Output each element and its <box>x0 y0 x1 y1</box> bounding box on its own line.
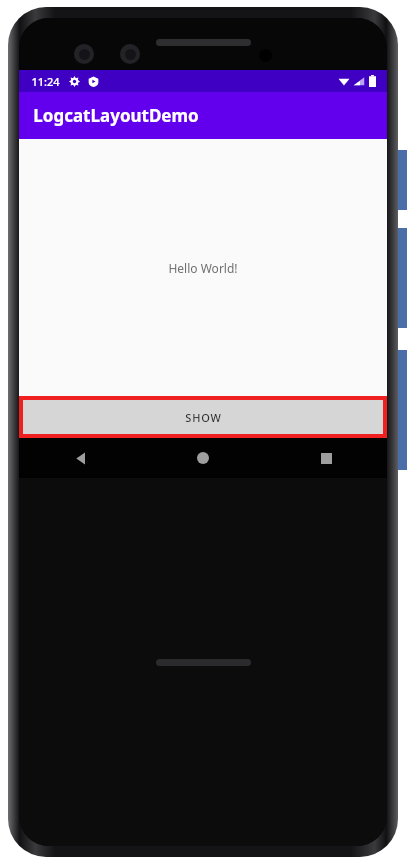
staticText: Hello World! <box>168 260 238 276</box>
button[interactable]: Back <box>58 438 102 478</box>
staticText: 11:24 <box>31 74 60 89</box>
button[interactable]: Recents <box>304 438 348 478</box>
button[interactable]: Home <box>181 438 225 478</box>
staticText: LogcatLayoutDemo <box>33 104 199 127</box>
staticText: SHOW <box>185 410 222 425</box>
button[interactable]: SHOW <box>23 400 383 434</box>
